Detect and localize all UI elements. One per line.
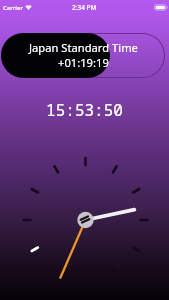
staticText: +01:19:19 [58, 55, 109, 70]
staticText: 15:53:50 [46, 99, 123, 121]
staticText: Japan Standard Time [29, 40, 138, 55]
staticText: Carrier [3, 4, 23, 12]
button[interactable]: Japan Standard Time [1, 33, 165, 78]
staticText: 2:34 PM [72, 3, 97, 12]
